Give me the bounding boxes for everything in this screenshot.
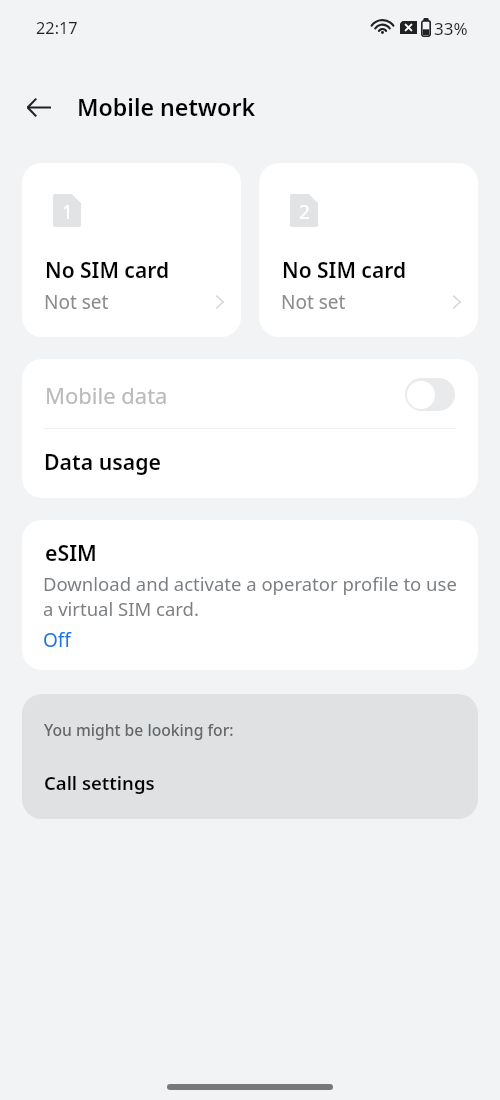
button[interactable]: Mobile data off — [405, 378, 455, 411]
staticText: 1 — [62, 199, 73, 225]
staticText: Data usage — [44, 447, 162, 476]
staticText: Off — [43, 627, 71, 653]
staticText: Mobile data — [45, 380, 168, 410]
staticText: You might be looking for: — [44, 719, 234, 740]
staticText: 22:17 — [36, 17, 78, 39]
button[interactable]: eSIM — [22, 520, 478, 670]
button[interactable]: 2 — [259, 163, 478, 337]
staticText: Download and activate a operator profile… — [43, 571, 457, 621]
staticText: Not set — [44, 289, 109, 315]
staticText: No SIM card — [282, 256, 407, 285]
staticText: Mobile network — [77, 91, 256, 123]
staticText: Not set — [281, 289, 346, 315]
staticText: Call settings — [44, 770, 155, 795]
button[interactable]: Data usage — [22, 429, 478, 498]
button[interactable]: Mobile data — [22, 359, 478, 428]
staticText: 2 — [299, 199, 310, 225]
button[interactable]: 1 — [22, 163, 241, 337]
button[interactable]: Call settings — [22, 752, 478, 819]
staticText: No SIM card — [45, 256, 170, 285]
staticText: 33% — [434, 17, 468, 40]
staticText: eSIM — [45, 538, 97, 567]
button[interactable]: Back — [14, 83, 62, 131]
